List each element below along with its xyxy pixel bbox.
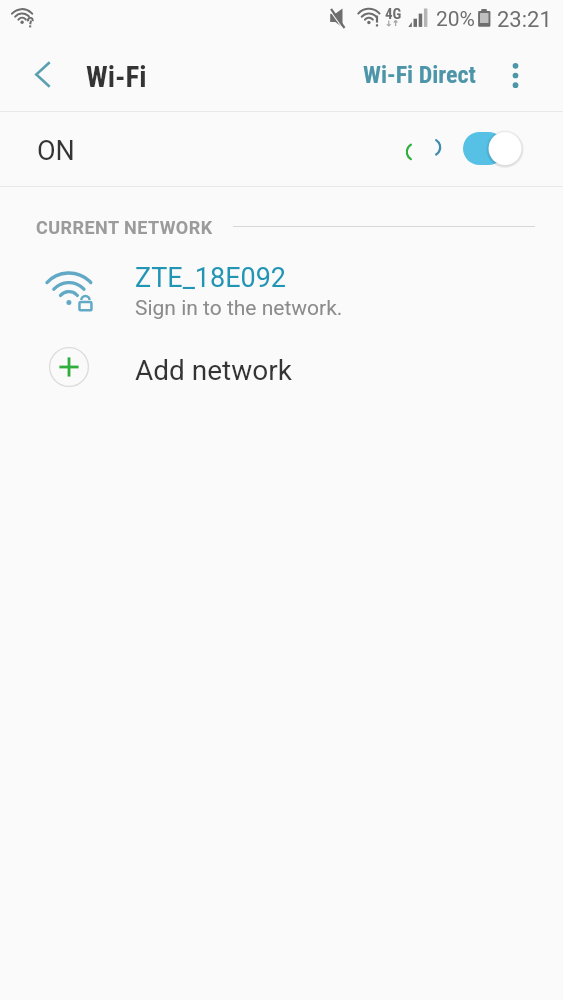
staticText: Wi-Fi xyxy=(86,60,147,94)
staticText: 4G xyxy=(385,5,402,23)
button[interactable]: Navigate up xyxy=(18,49,68,99)
staticText: 23:21 xyxy=(497,7,552,33)
button[interactable]: ON xyxy=(0,112,563,186)
button[interactable]: Wi-Fi Direct xyxy=(355,42,484,108)
staticText: Add network xyxy=(135,354,292,387)
button[interactable]: ZTE_18E092 xyxy=(0,248,563,330)
staticText: ZTE_18E092 xyxy=(135,262,287,294)
staticText: 20% xyxy=(436,7,475,32)
button[interactable]: Add network xyxy=(0,332,563,404)
button[interactable]: More options xyxy=(491,42,539,108)
staticText: CURRENT NETWORK xyxy=(36,217,213,238)
staticText: Wi-Fi Direct xyxy=(363,61,476,89)
staticText: Sign in to the network. xyxy=(135,296,343,321)
staticText: ON xyxy=(37,135,75,167)
